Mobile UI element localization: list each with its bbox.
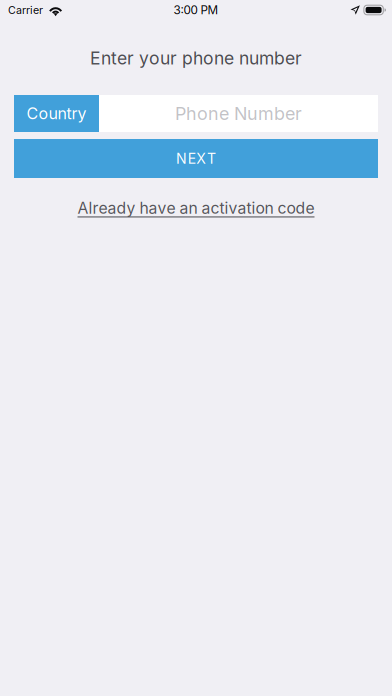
- button[interactable]: NEXT: [14, 139, 378, 178]
- staticText: N: [176, 150, 187, 167]
- staticText: Already have an activation code: [77, 198, 314, 217]
- staticText: Enter your phone number: [90, 47, 302, 69]
- staticText: Country: [26, 104, 86, 123]
- staticText: X: [196, 150, 206, 167]
- staticText: E: [188, 150, 196, 167]
- button[interactable]: Phone Number: [99, 95, 378, 132]
- staticText: Carrier: [8, 3, 43, 16]
- staticText: T: [207, 150, 216, 167]
- staticText: 3:00 PM: [173, 3, 218, 17]
- button[interactable]: Country: [14, 95, 99, 132]
- staticText: Phone Number: [175, 103, 302, 124]
- button[interactable]: Already have an activation code: [77, 178, 314, 218]
